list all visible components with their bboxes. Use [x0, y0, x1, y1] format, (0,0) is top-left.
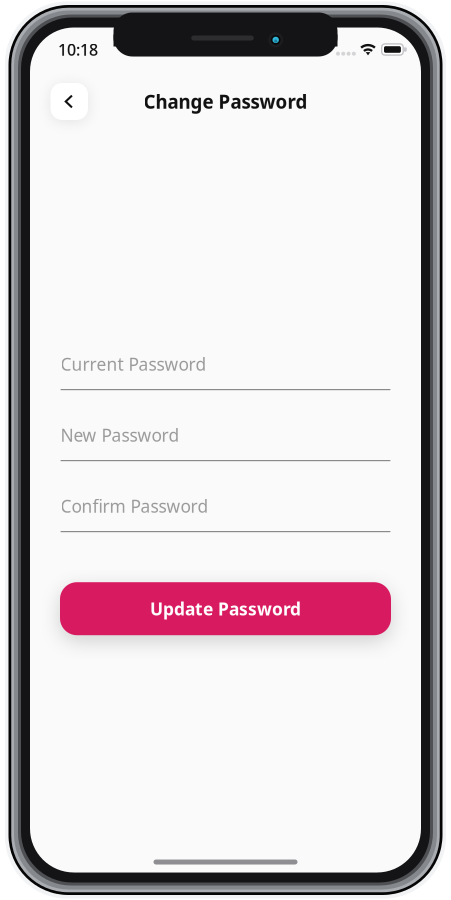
staticText: Confirm Password — [60, 494, 208, 517]
staticText: Current Password — [60, 352, 206, 375]
button[interactable]: Confirm Password — [60, 494, 390, 532]
staticText: 10:18 — [58, 39, 98, 60]
staticText: Update Password — [150, 597, 301, 620]
button[interactable]: Current Password — [60, 352, 390, 390]
button[interactable]: Back — [50, 83, 88, 120]
button[interactable]: New Password — [60, 423, 390, 461]
staticText: New Password — [60, 423, 179, 446]
button[interactable]: Update Password — [60, 582, 391, 635]
staticText: Change Password — [143, 89, 307, 114]
